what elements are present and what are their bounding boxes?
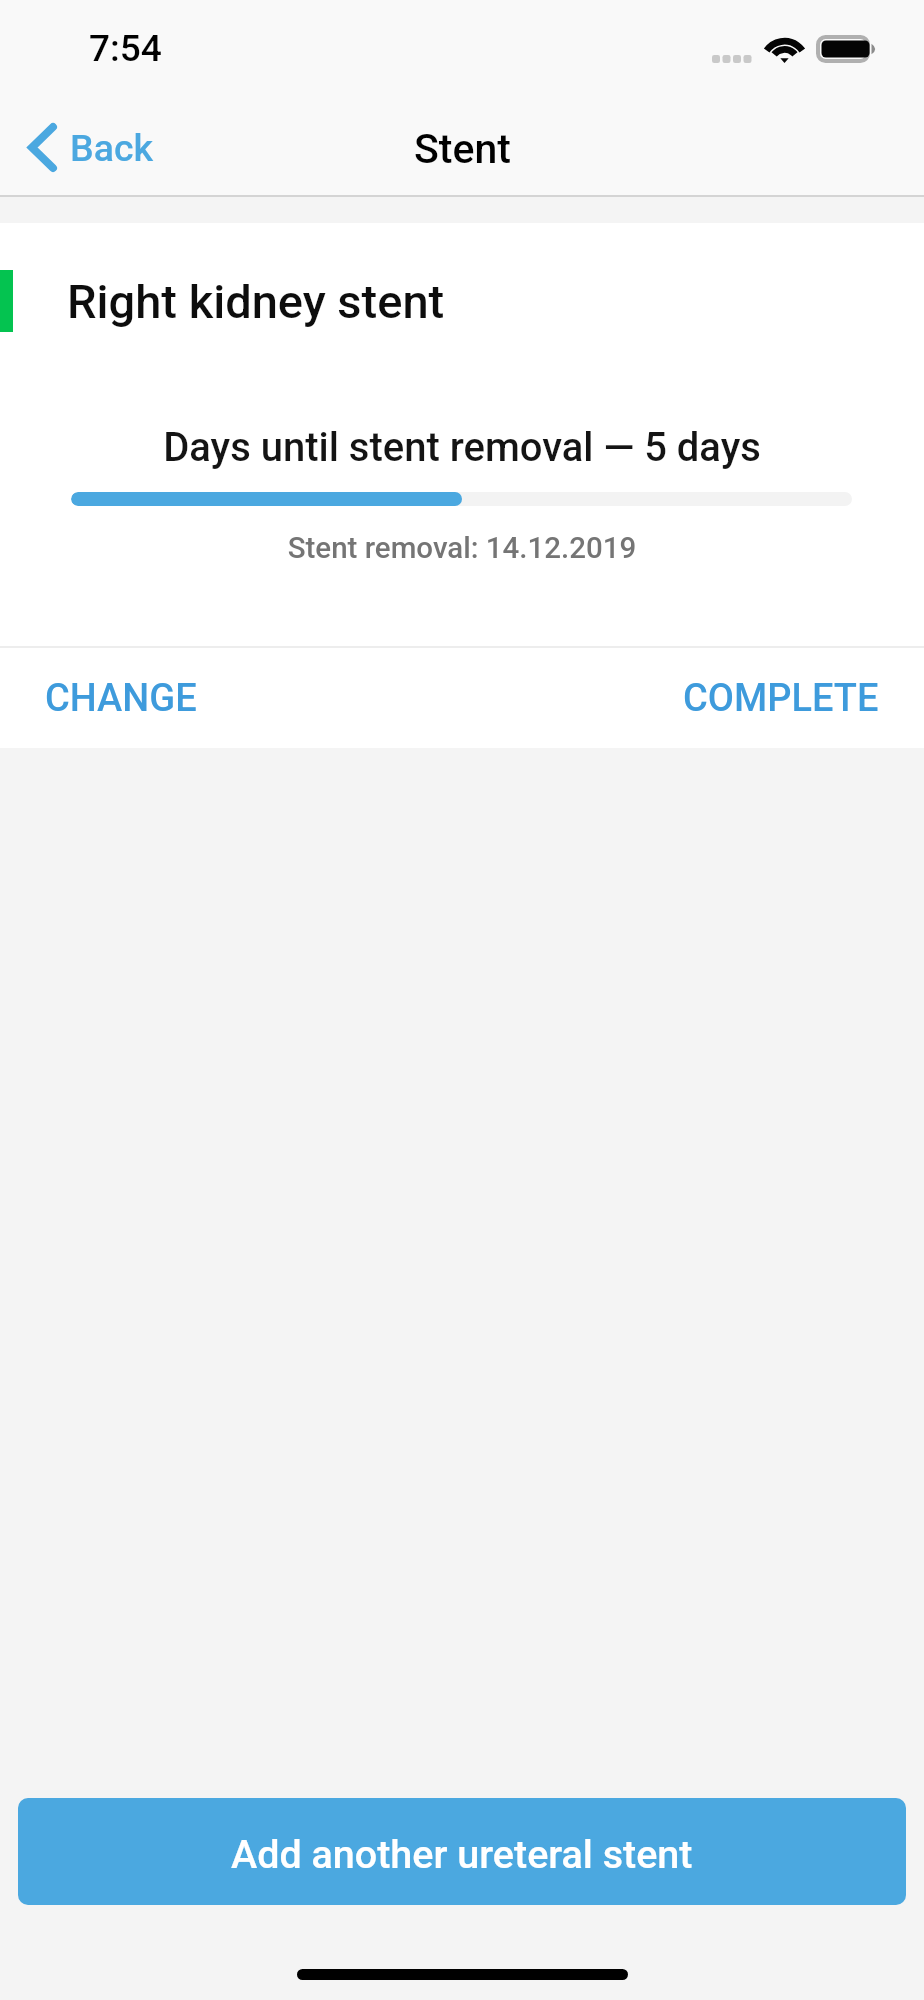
button[interactable]: Add another ureteral stent: [18, 1798, 906, 1905]
staticText: Stent: [414, 125, 511, 173]
button[interactable]: CHANGE: [0, 648, 237, 748]
staticText: CHANGE: [45, 676, 197, 721]
button[interactable]: Back: [0, 109, 176, 186]
staticText: Right kidney stent: [67, 274, 445, 329]
staticText: COMPLETE: [683, 676, 879, 721]
staticText: Days until stent removal — 5 days: [0, 424, 924, 471]
staticText: Stent removal: 14.12.2019: [0, 531, 924, 566]
staticText: Add another ureteral stent: [231, 1831, 693, 1877]
staticText: Back: [70, 126, 154, 170]
staticText: 7:54: [89, 27, 162, 70]
button[interactable]: COMPLETE: [643, 648, 924, 748]
